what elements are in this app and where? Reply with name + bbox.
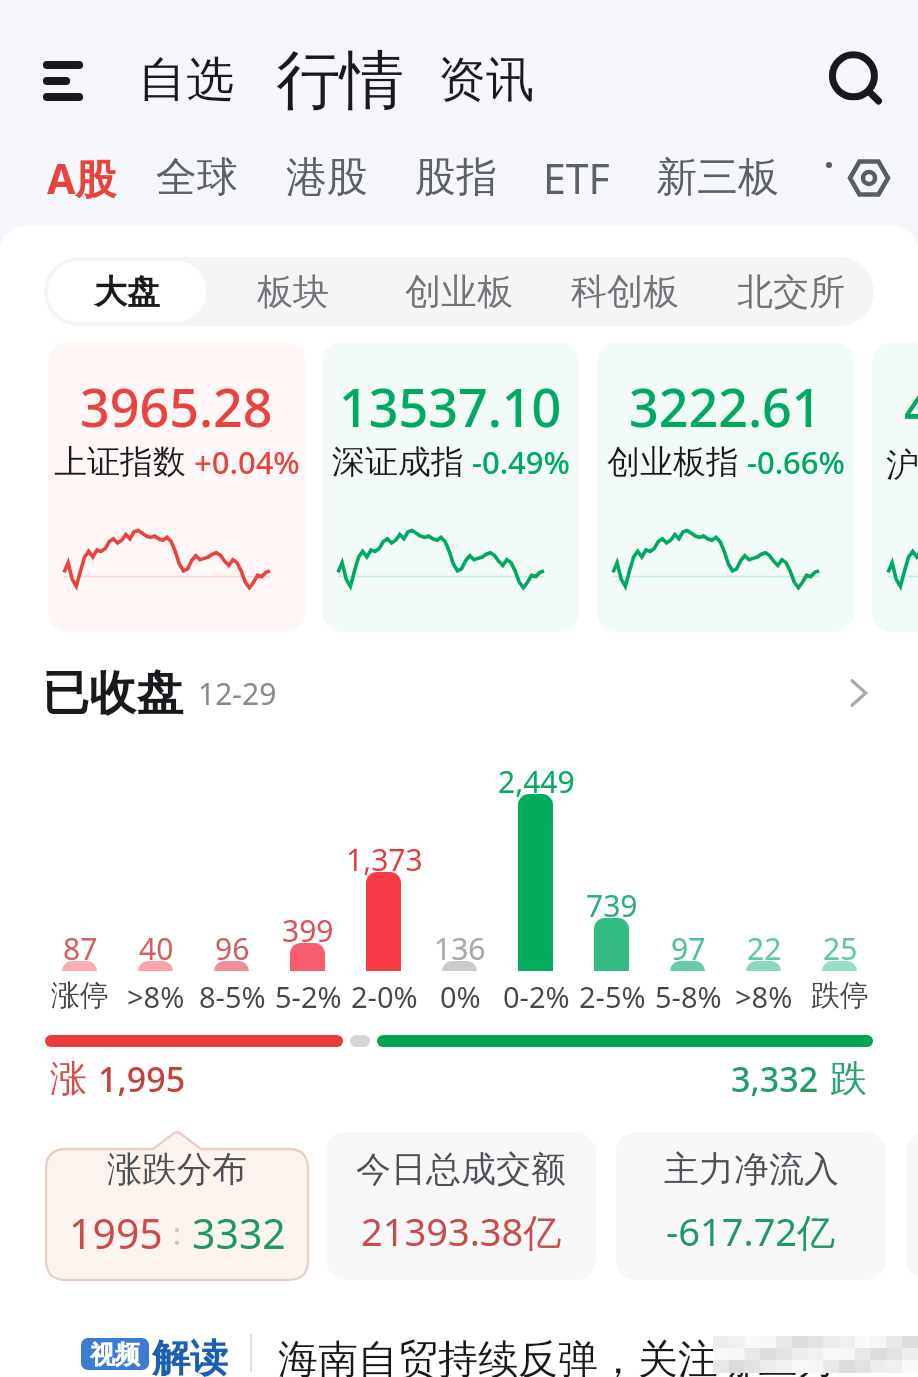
staticText: 21393.38亿 [361,1205,562,1257]
button[interactable]: 全球 [140,130,254,226]
staticText: ETF [543,150,610,206]
staticText: +0.04% [194,441,300,483]
button[interactable]: Search [820,44,892,116]
staticText: 8-5% [199,977,266,1016]
staticText: 跌 [830,1055,867,1102]
staticText: -0.49% [472,441,570,483]
button[interactable]: ETF [527,130,626,226]
button[interactable]: 3965.28 [48,342,305,632]
staticText: 涨 [50,1055,87,1102]
button[interactable]: 板块 [214,261,372,322]
staticText: 自选 [138,50,234,110]
staticText: 股指 [415,152,497,204]
button[interactable]: 创业板 [380,261,538,322]
staticText: 3965.28 [80,371,273,442]
staticText: 25 [823,928,858,969]
button[interactable]: 行情 [274,40,406,121]
staticText: 海南自贸持续反弹，关注哪三方 [278,1334,838,1377]
staticText: 解读 [152,1334,228,1377]
staticText: >8% [735,977,793,1016]
button[interactable]: 科创板 [546,261,704,322]
staticText: 4218.67 [904,371,918,442]
staticText: 22 [747,928,782,969]
staticText: 87 [63,928,98,969]
staticText: 12-29 [198,673,277,714]
button[interactable]: 3222.61 [597,342,854,632]
staticText: 新三板 [656,152,779,204]
button[interactable] [46,1132,308,1280]
staticText: 1,995 [98,1056,186,1102]
staticText: 5-2% [275,977,342,1016]
staticText: 沪深300 [886,441,918,486]
staticText: 13537.10 [339,371,562,442]
button[interactable]: 港股 [270,130,384,226]
staticText: : [173,1213,182,1254]
button[interactable]: 今日总成交额 [326,1132,596,1280]
staticText: 港股 [286,152,368,204]
staticText: 涨跌分布 [107,1147,247,1191]
button[interactable]: 股指 [399,130,513,226]
button[interactable]: 大盘 [48,261,206,322]
staticText: 0-2% [503,977,570,1016]
staticText: 全球 [156,152,238,204]
button[interactable]: 视频 [0,1330,918,1377]
button[interactable]: 新三板 [640,130,795,226]
staticText: 2,449 [498,761,575,802]
staticText: 2-5% [579,977,646,1016]
staticText: 739 [586,885,638,926]
button[interactable]: 北交所 [712,261,870,322]
staticText: -0.66% [747,441,845,483]
staticText: 北交所 [737,269,845,314]
staticText: 主力净流入 [664,1147,839,1191]
staticText: 3332 [192,1205,286,1261]
button[interactable]: 已收盘 [42,662,878,724]
staticText: 399 [282,910,334,951]
staticText: 科创板 [571,269,679,314]
staticText: 创业板指 [607,441,739,483]
staticText: 40 [139,928,174,969]
button[interactable]: Settings [840,149,898,207]
staticText: 跌停 [811,977,869,1014]
staticText: 今日总成交额 [356,1147,566,1191]
staticText: 0% [440,977,481,1016]
button[interactable]: 主力净流入 [616,1132,886,1280]
staticText: 136 [434,928,486,969]
staticText: 1995 [69,1205,163,1261]
staticText: 已收盘 [42,664,183,723]
staticText: 3222.61 [629,371,822,442]
staticText: A股 [47,150,117,206]
staticText: 5-8% [655,977,722,1016]
button[interactable]: 自选 [136,50,236,110]
staticText: 深证成指 [332,441,464,483]
staticText: 2-0% [351,977,418,1016]
staticText: 板块 [257,269,329,314]
staticText: 上证指数 [54,441,186,483]
staticText: 视频 [90,1339,140,1370]
staticText: 3,332 [731,1056,819,1102]
staticText: 涨停 [51,977,109,1014]
staticText: >8% [127,977,185,1016]
staticText: 大盘 [94,271,160,313]
staticText: 97 [671,928,706,969]
staticText: 行情 [276,40,404,121]
staticText: 资讯 [438,50,534,110]
staticText: 96 [215,928,250,969]
button[interactable]: A股 [31,130,133,226]
button[interactable]: 资讯 [436,50,536,110]
button[interactable]: 13537.10 [322,342,579,632]
button[interactable]: Menu [24,43,99,118]
staticText: -617.72亿 [666,1205,836,1257]
staticText: 1,373 [346,839,423,880]
staticText: 创业板 [405,269,513,314]
button[interactable]: 4218.67 [872,342,918,632]
